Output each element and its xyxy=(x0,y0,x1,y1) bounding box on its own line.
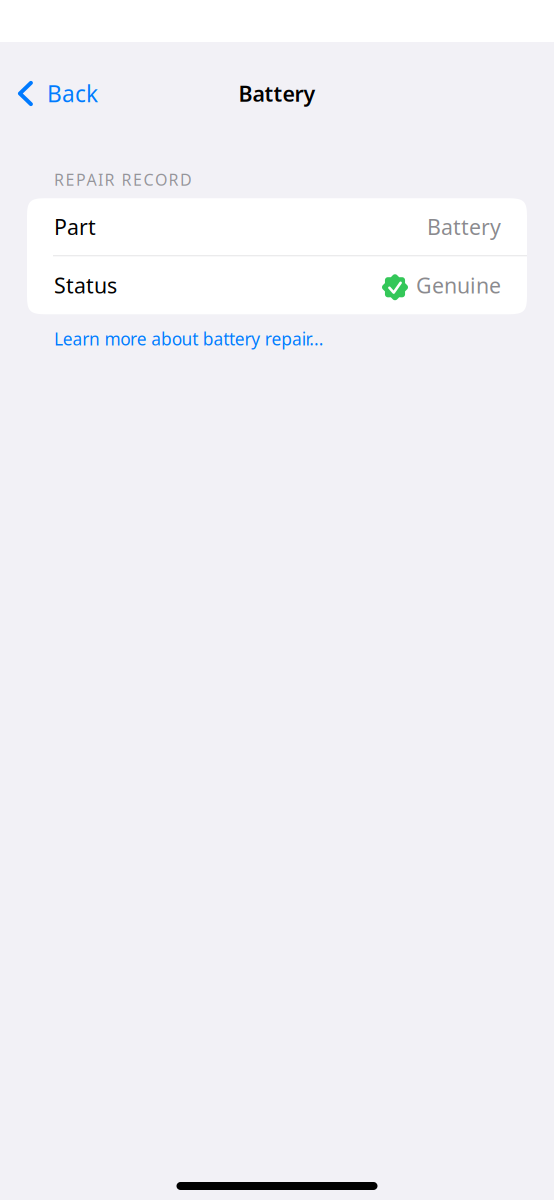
staticText: Battery xyxy=(238,79,315,108)
staticText: Learn more about battery repair... xyxy=(54,327,324,350)
staticText: Back xyxy=(47,78,98,108)
button[interactable]: Back xyxy=(0,69,110,117)
button[interactable]: Learn more about battery repair... xyxy=(54,325,324,352)
button[interactable]: Part xyxy=(27,198,527,255)
staticText: Part xyxy=(54,213,96,241)
staticText: Genuine xyxy=(416,271,501,299)
staticText: Status xyxy=(54,271,117,299)
staticText: Battery xyxy=(427,213,501,241)
button[interactable]: Status xyxy=(27,256,527,314)
staticText: REPAIR RECORD xyxy=(54,169,192,190)
